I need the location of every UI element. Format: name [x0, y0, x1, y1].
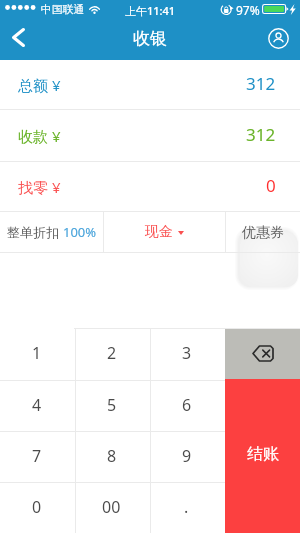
button[interactable]: 5 [75, 380, 150, 431]
staticText: 97% [236, 2, 260, 18]
staticText: 9 [182, 445, 192, 467]
staticText: 0 [266, 174, 276, 197]
staticText: 上午11:41 [125, 3, 176, 18]
button[interactable]: 7 [0, 431, 75, 482]
staticText: 0 [32, 496, 42, 518]
button[interactable]: 结账 [225, 379, 300, 533]
staticText: 6 [182, 394, 192, 416]
staticText: 2 [107, 342, 117, 364]
staticText: 312 [246, 123, 276, 146]
button[interactable]: 找零 ¥ [0, 162, 300, 211]
staticText: 4 [32, 394, 42, 416]
button[interactable]: . [150, 482, 225, 533]
staticText: 100% [63, 223, 97, 241]
button[interactable]: 0 [0, 482, 75, 533]
button[interactable]: 现金 [104, 212, 225, 252]
staticText: 00 [102, 496, 121, 518]
button[interactable]: 6 [150, 380, 225, 431]
staticText: 整单折扣 [7, 223, 63, 241]
staticText: 1 [32, 342, 42, 364]
button[interactable]: 整单折扣 [0, 212, 103, 252]
button[interactable]: Back [0, 20, 40, 60]
staticText: 3 [182, 342, 192, 364]
staticText: 收银 [133, 28, 167, 49]
staticText: 7 [32, 445, 42, 467]
staticText: 找零 ¥ [18, 177, 61, 197]
button[interactable]: 总额 ¥ [0, 60, 300, 109]
button[interactable]: 00 [75, 482, 150, 533]
button[interactable]: 4 [0, 380, 75, 431]
button[interactable]: 收款 ¥ [0, 110, 300, 161]
staticText: 现金 [145, 223, 173, 241]
button[interactable]: 优惠券 [226, 212, 300, 252]
staticText: 中国联通 [41, 3, 85, 17]
button[interactable]: Backspace [225, 328, 300, 379]
staticText: 312 [246, 72, 276, 95]
button[interactable]: 9 [150, 431, 225, 482]
button[interactable]: 1 [0, 328, 75, 380]
button[interactable]: Account [260, 20, 300, 60]
staticText: 8 [107, 445, 117, 467]
staticText: 总额 ¥ [18, 75, 61, 95]
button[interactable]: 3 [150, 328, 225, 380]
staticText: 5 [107, 394, 117, 416]
staticText: 收款 ¥ [18, 126, 61, 146]
staticText: 优惠券 [242, 224, 284, 242]
staticText: 结账 [247, 444, 279, 464]
button[interactable]: 8 [75, 431, 150, 482]
button[interactable]: 2 [75, 328, 150, 380]
staticText: . [184, 496, 189, 518]
